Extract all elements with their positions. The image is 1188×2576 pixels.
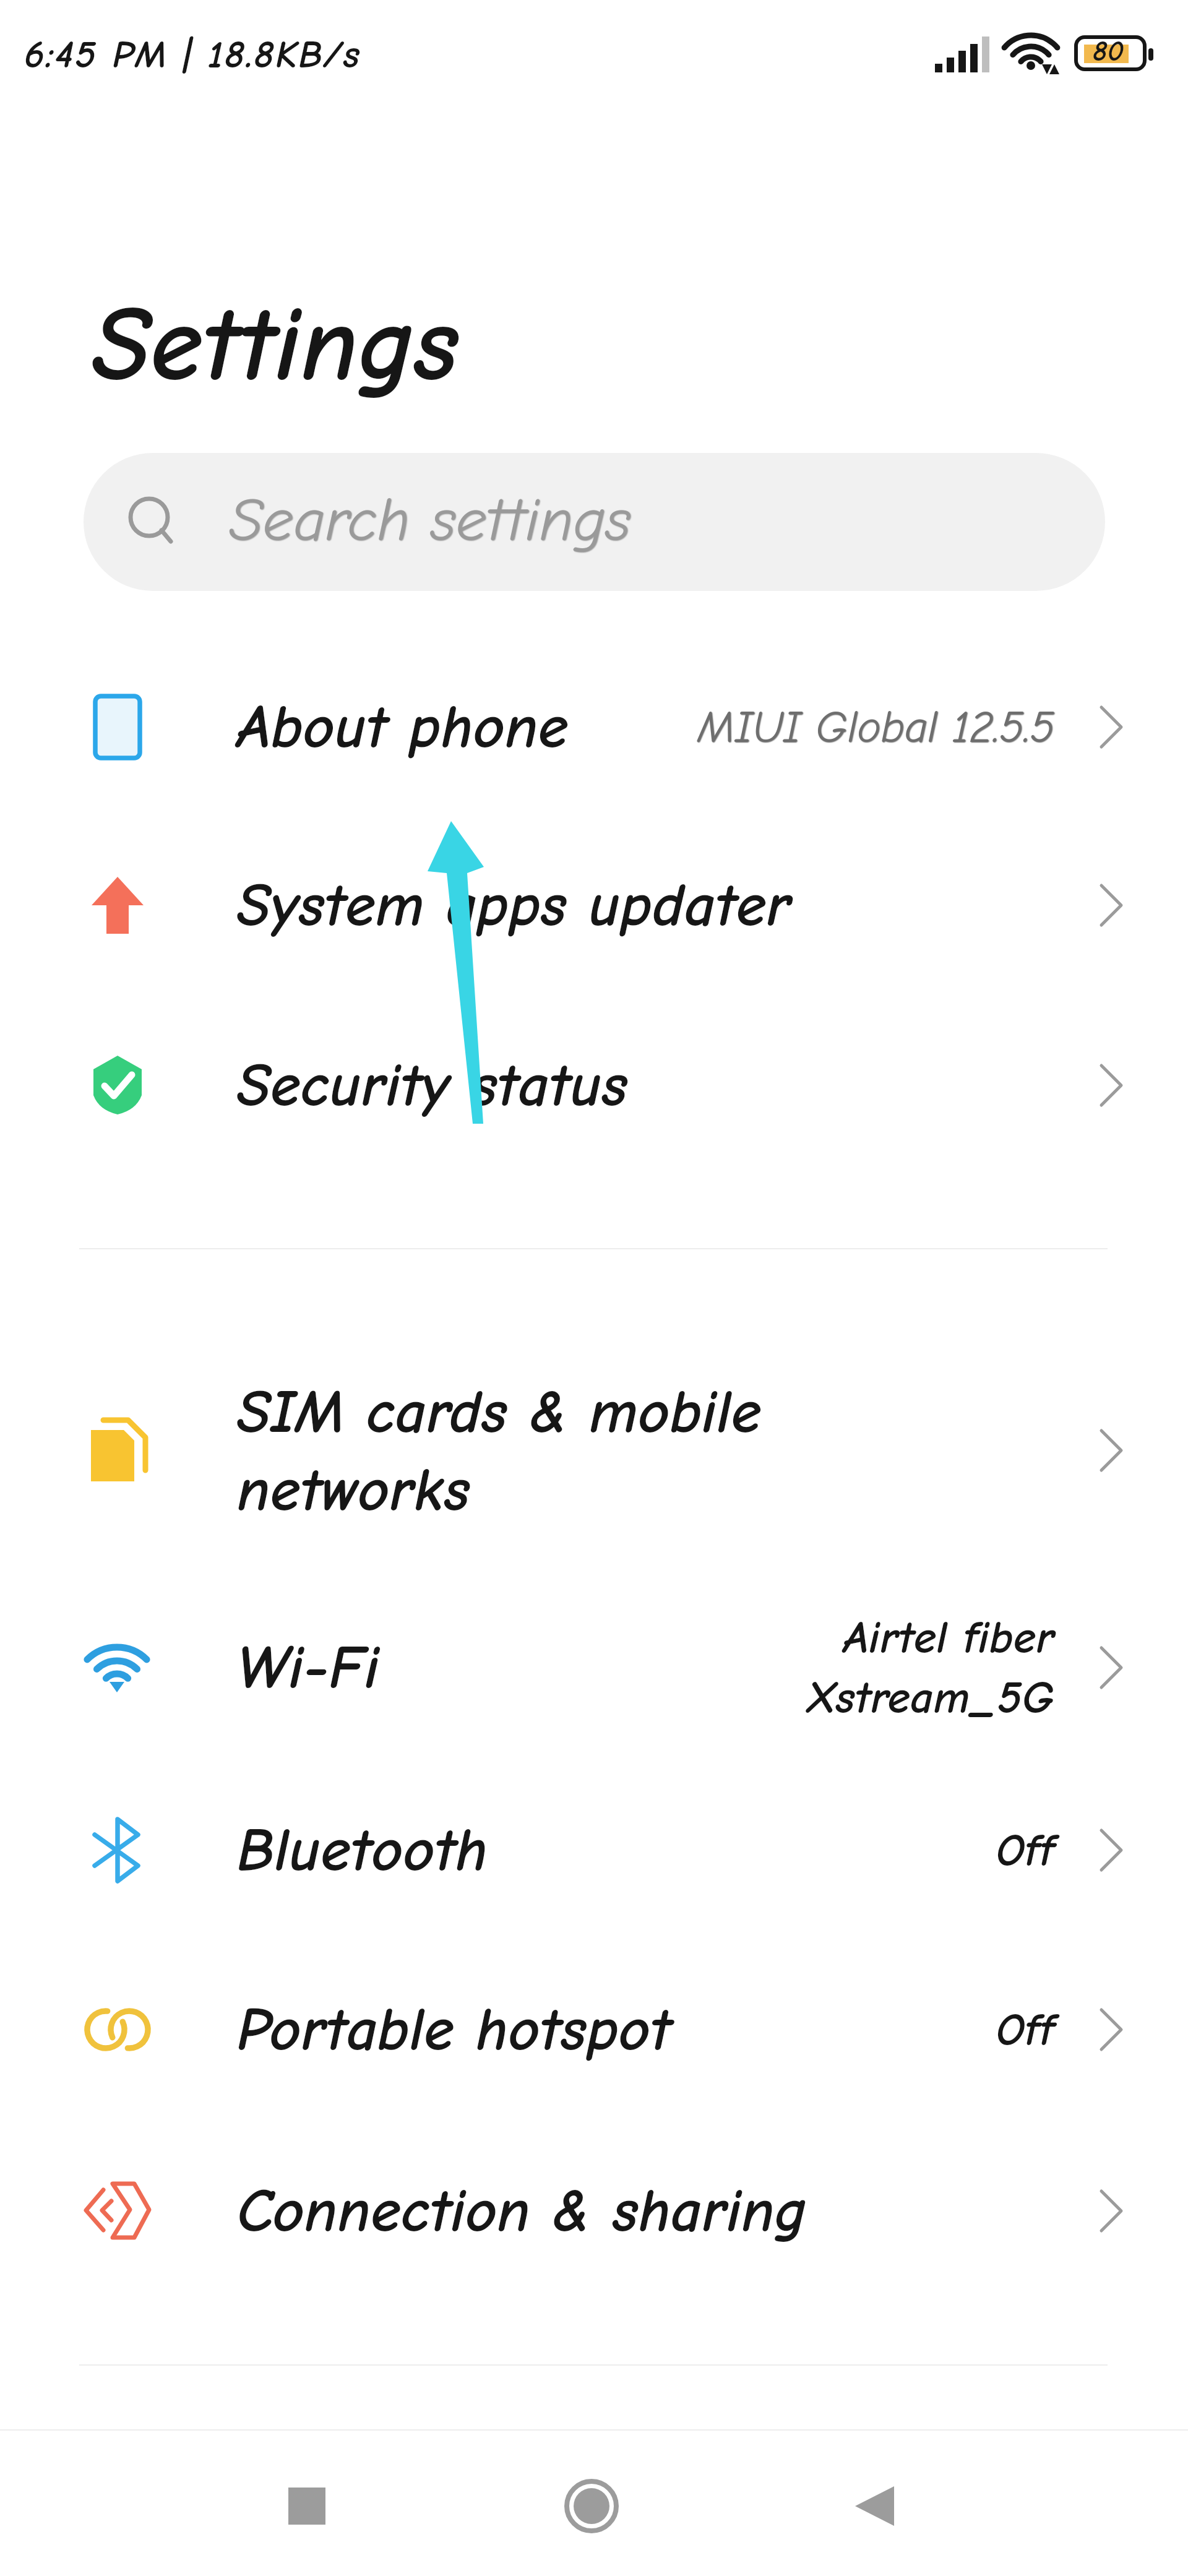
button[interactable]: About phone: [0, 637, 1188, 817]
button[interactable]: Connection & sharing: [0, 2121, 1188, 2301]
staticText: MIUI Global 12.5.5: [497, 702, 1054, 753]
staticText: Off: [497, 1824, 1054, 1877]
staticText: Wi-Fi: [237, 1632, 379, 1703]
staticText: Bluetooth: [237, 1815, 488, 1885]
button[interactable]: Search settings: [84, 453, 1105, 591]
button[interactable]: Portable hotspot: [0, 1940, 1188, 2119]
button[interactable]: Home: [530, 2444, 653, 2568]
button[interactable]: Recents: [245, 2444, 369, 2568]
button[interactable]: Back: [793, 2444, 917, 2568]
staticText: 80: [1093, 35, 1124, 68]
staticText: Security status: [237, 1050, 628, 1121]
staticText: Portable hotspot: [237, 1994, 671, 2065]
staticText: Off: [497, 2004, 1054, 2056]
button[interactable]: Security status: [0, 996, 1188, 1175]
button[interactable]: System apps updater: [0, 816, 1188, 995]
button[interactable]: Wi-Fi: [0, 1578, 1188, 1757]
button[interactable]: SIM cards & mobile networks: [0, 1339, 1188, 1562]
staticText: About phone: [237, 692, 569, 762]
staticText: Search settings: [229, 485, 631, 556]
staticText: Settings: [92, 283, 459, 406]
staticText: Connection & sharing: [237, 2176, 807, 2246]
staticText: SIM cards & mobile networks: [237, 1377, 762, 1525]
staticText: Airtel fiber Xstream_5G: [497, 1611, 1054, 1724]
staticText: System apps updater: [237, 870, 791, 941]
staticText: 6:45 PM | 18.8KB/s: [24, 32, 361, 77]
button[interactable]: Bluetooth: [0, 1760, 1188, 1940]
